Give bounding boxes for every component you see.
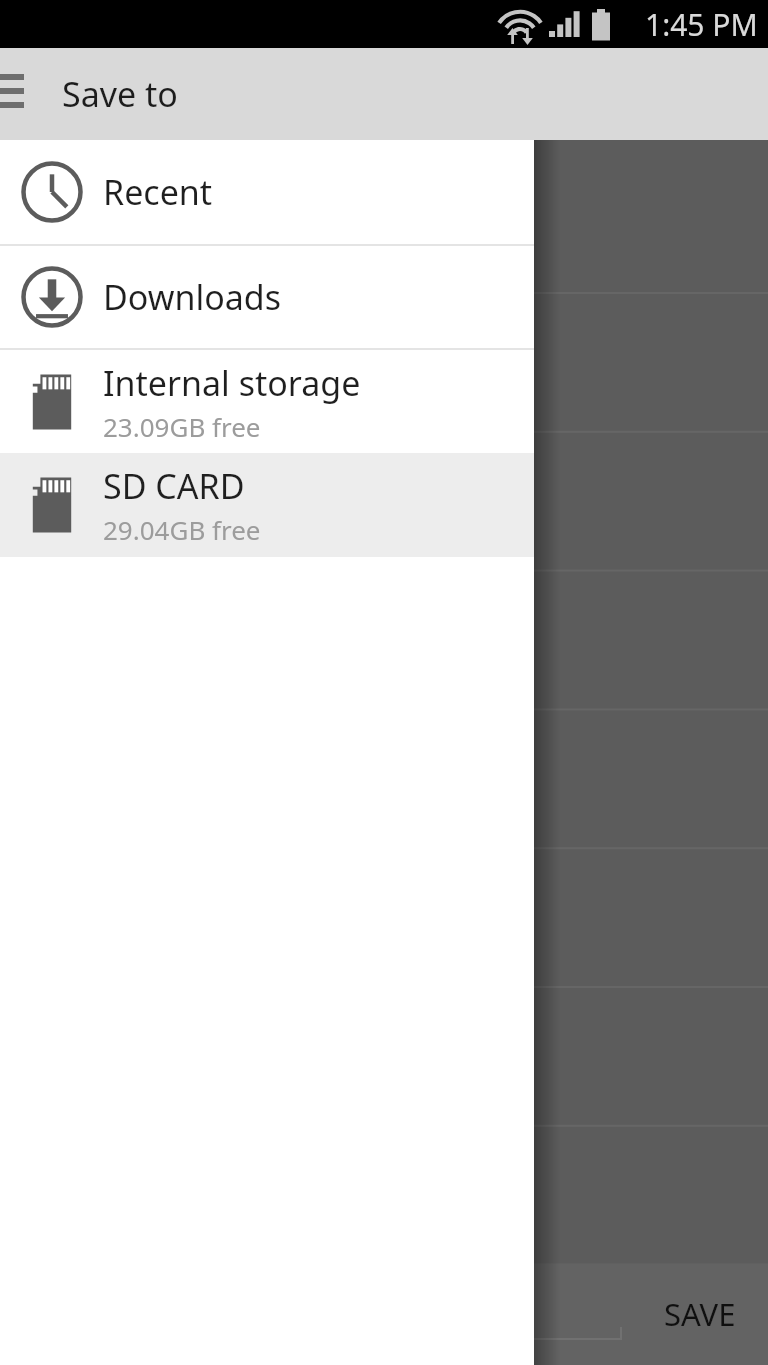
staticText: 29.04GB free xyxy=(103,512,261,547)
button[interactable]: SD CARD xyxy=(0,453,534,557)
staticText: Recent xyxy=(103,169,213,215)
staticText: Save to xyxy=(62,71,178,117)
button[interactable]: Recent xyxy=(0,140,534,244)
button[interactable]: SAVE xyxy=(636,1277,764,1351)
staticText: Downloads xyxy=(103,274,282,320)
staticText: SD CARD xyxy=(103,463,245,509)
staticText: Internal storage xyxy=(103,360,361,406)
button[interactable]: Internal storage xyxy=(0,350,534,453)
staticText: SAVE xyxy=(664,1293,736,1335)
button[interactable]: Open navigation drawer xyxy=(0,61,40,127)
staticText: 1:45 PM xyxy=(645,4,758,45)
staticText: 23.09GB free xyxy=(103,409,261,444)
button[interactable]: Downloads xyxy=(0,246,534,348)
